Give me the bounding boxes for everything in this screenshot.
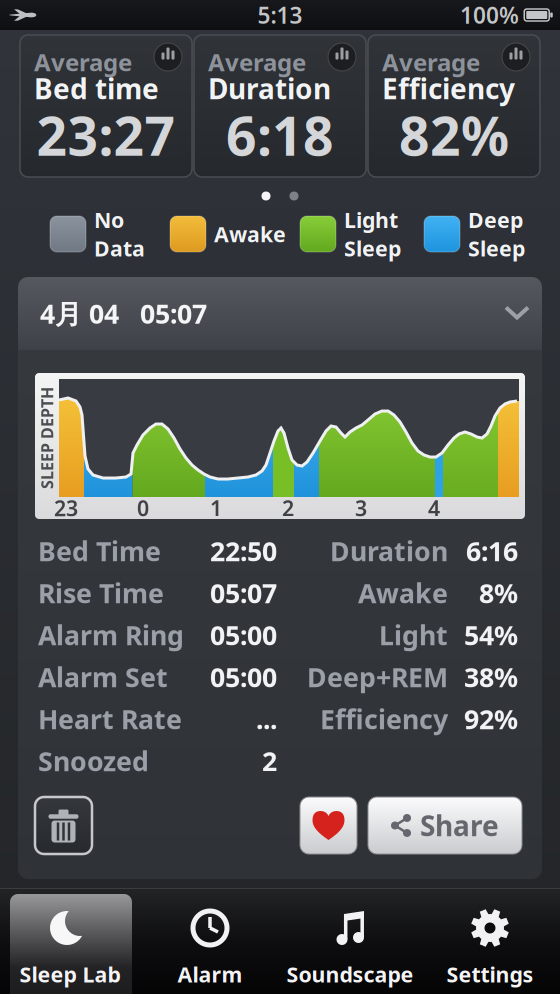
button[interactable]: Average	[368, 35, 540, 177]
button[interactable]: Average	[20, 35, 192, 177]
staticText: Bed Time	[38, 533, 161, 569]
staticText: SLEEP DEPTH	[0, 427, 98, 449]
staticText: Duration	[208, 70, 331, 107]
staticText: Sleep Lab	[19, 960, 120, 988]
button[interactable]: 4月 04 05:07	[18, 277, 542, 350]
staticText: Bed time	[34, 70, 159, 107]
staticText: Average	[208, 46, 306, 78]
button[interactable]: Delete	[35, 797, 92, 854]
staticText: Efficiency	[382, 70, 515, 107]
button[interactable]: Settings	[420, 888, 560, 994]
staticText: Deep Sleep	[468, 206, 525, 262]
button[interactable]: Average	[194, 35, 366, 177]
staticText: 38%	[464, 659, 518, 695]
staticText: Efficiency	[320, 701, 448, 737]
staticText: 5:13	[257, 0, 302, 30]
staticText: ...	[256, 701, 277, 737]
staticText: 23	[54, 494, 78, 522]
staticText: 2	[282, 494, 294, 522]
staticText: Settings	[446, 960, 533, 988]
staticText: Soundscape	[286, 960, 413, 988]
staticText: 92%	[464, 701, 518, 737]
button[interactable]: Favorite	[300, 797, 357, 854]
staticText: 2	[262, 743, 277, 779]
staticText: 100%	[460, 0, 519, 30]
staticText: 6:18	[226, 100, 334, 170]
staticText: Awake	[214, 220, 286, 248]
staticText: 3	[355, 494, 367, 522]
staticText: Light	[379, 617, 448, 653]
staticText: Deep+REM	[307, 659, 448, 695]
staticText: Awake	[358, 575, 448, 611]
staticText: Share	[420, 807, 499, 844]
staticText: Heart Rate	[38, 701, 182, 737]
staticText: Rise Time	[38, 575, 164, 611]
staticText: 82%	[399, 100, 509, 170]
button[interactable]: Alarm	[140, 888, 280, 994]
staticText: 05:00	[210, 617, 277, 653]
staticText: 8%	[479, 575, 518, 611]
staticText: Alarm Set	[38, 659, 168, 695]
staticText: Alarm	[177, 960, 242, 988]
staticText: 6:16	[466, 533, 518, 569]
staticText: Alarm Ring	[38, 617, 184, 653]
button[interactable]: Soundscape	[280, 888, 420, 994]
button[interactable]: Share	[368, 797, 522, 854]
staticText: 4月 04 05:07	[40, 296, 207, 331]
staticText: No Data	[94, 206, 145, 262]
staticText: 05:00	[210, 659, 277, 695]
staticText: Duration	[330, 533, 448, 569]
staticText: 0	[137, 494, 149, 522]
staticText: Light Sleep	[344, 206, 401, 262]
button[interactable]: Sleep Lab	[0, 888, 140, 994]
staticText: Average	[382, 46, 480, 78]
staticText: 23:27	[36, 100, 175, 170]
staticText: 22:50	[210, 533, 277, 569]
staticText: 05:07	[210, 575, 277, 611]
staticText: Snoozed	[38, 743, 149, 779]
staticText: 1	[210, 494, 222, 522]
staticText: Average	[34, 46, 132, 78]
staticText: 54%	[464, 617, 518, 653]
staticText: 4	[428, 494, 440, 522]
